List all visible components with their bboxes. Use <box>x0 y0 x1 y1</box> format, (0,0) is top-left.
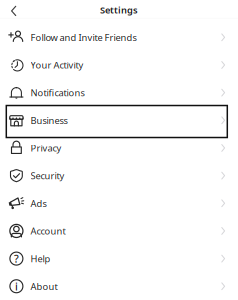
staticText: Business <box>31 114 68 126</box>
staticText: About <box>31 280 58 292</box>
button[interactable]: Back <box>2 0 24 18</box>
staticText: Account <box>31 225 66 237</box>
button[interactable]: Security <box>0 162 238 189</box>
button[interactable]: Follow and Invite Friends <box>0 23 238 51</box>
staticText: Privacy <box>31 142 62 154</box>
staticText: ? <box>14 251 19 266</box>
staticText: Help <box>31 252 51 265</box>
staticText: Notifications <box>31 86 85 99</box>
staticText: Follow and Invite Friends <box>31 31 137 43</box>
staticText: Security <box>31 169 65 182</box>
staticText: Ads <box>31 197 47 209</box>
staticText: i <box>15 279 18 293</box>
button[interactable]: Notifications <box>0 79 238 106</box>
button[interactable]: i <box>0 272 238 300</box>
button[interactable]: Privacy <box>0 134 238 162</box>
button[interactable]: Account <box>0 217 238 245</box>
staticText: Settings <box>100 4 138 16</box>
button[interactable]: Business <box>0 106 238 134</box>
button[interactable]: Ads <box>0 189 238 217</box>
staticText: Your Activity <box>31 59 84 71</box>
button[interactable]: ? <box>0 245 238 272</box>
button[interactable]: Your Activity <box>0 51 238 79</box>
